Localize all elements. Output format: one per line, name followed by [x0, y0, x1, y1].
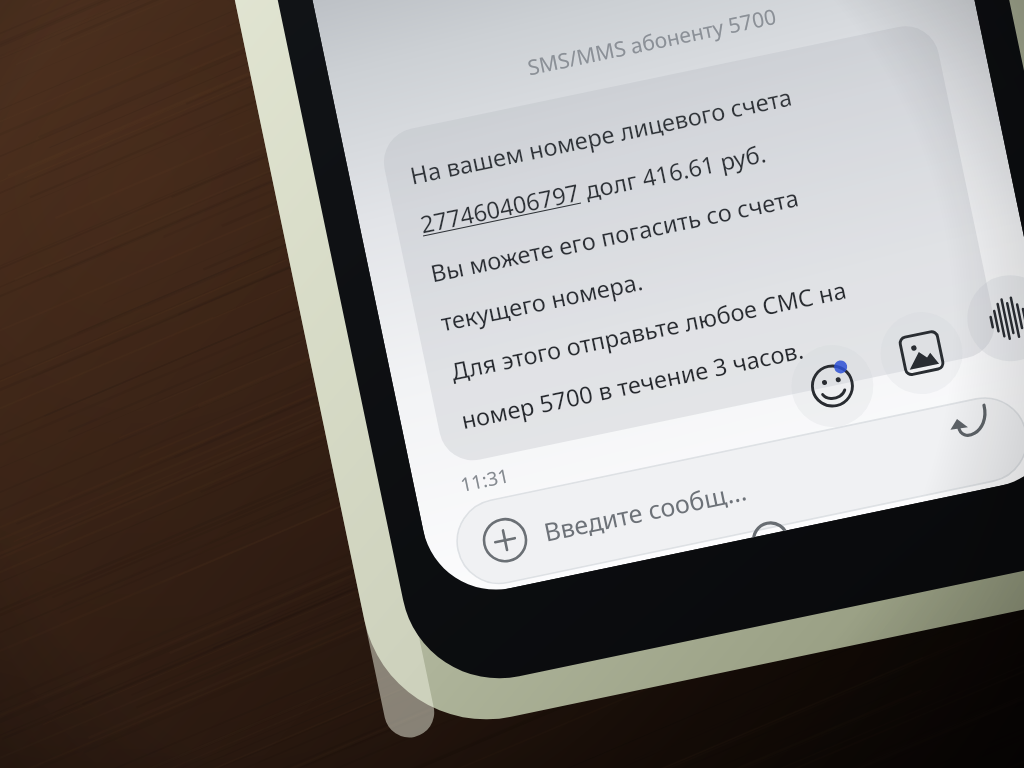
- button[interactable]: Photograph of a phone showing an SMS fro…: [0, 0, 1024, 768]
